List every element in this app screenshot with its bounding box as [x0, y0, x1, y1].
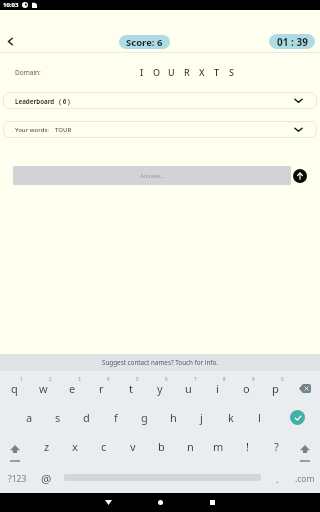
staticText: 3: [78, 376, 81, 382]
staticText: .com: [295, 473, 315, 485]
button[interactable]: n: [176, 433, 205, 459]
staticText: 10:03: [3, 1, 19, 9]
staticText: c: [101, 439, 107, 454]
staticText: Leaderboard: [15, 97, 55, 105]
staticText: @: [41, 471, 52, 487]
staticText: z: [44, 439, 50, 454]
staticText: ( 6 ): [59, 97, 70, 105]
button[interactable]: .com: [290, 466, 320, 492]
staticText: e: [69, 381, 76, 396]
staticText: t: [129, 381, 133, 396]
button[interactable]: r: [87, 375, 116, 401]
button[interactable]: f: [101, 404, 130, 430]
staticText: q: [11, 381, 18, 396]
button[interactable]: 01 : 39: [269, 34, 315, 49]
button[interactable]: @: [32, 466, 60, 492]
staticText: 5: [136, 376, 139, 382]
button[interactable]: w: [29, 375, 58, 401]
button[interactable]: e: [58, 375, 87, 401]
button[interactable]: a: [15, 404, 44, 430]
button[interactable]: p: [261, 375, 290, 401]
button[interactable]: u: [174, 375, 203, 401]
button[interactable]: d: [72, 404, 101, 430]
staticText: Your words:: [15, 126, 49, 134]
staticText: 01 : 39: [277, 35, 308, 49]
button[interactable]: t: [116, 375, 145, 401]
staticText: b: [158, 439, 165, 454]
button[interactable]: ?123: [2, 466, 32, 492]
staticText: f: [114, 410, 118, 425]
button[interactable]: Home: [134, 493, 186, 512]
staticText: m: [213, 439, 224, 454]
staticText: d: [83, 410, 90, 425]
staticText: O: [153, 66, 161, 78]
staticText: 0: [281, 376, 284, 382]
button[interactable]: Submit answer: [293, 169, 307, 183]
button[interactable]: v: [118, 433, 147, 459]
staticText: g: [141, 410, 148, 425]
staticText: u: [185, 381, 192, 396]
button[interactable]: j: [187, 404, 216, 430]
button[interactable]: l: [245, 404, 274, 430]
button[interactable]: Enter: [282, 404, 312, 430]
staticText: Domain:: [15, 68, 41, 77]
button[interactable]: Backspace: [290, 375, 319, 401]
button[interactable]: q: [0, 375, 29, 401]
button[interactable]: Back: [0, 29, 22, 53]
button[interactable]: i: [203, 375, 232, 401]
staticText: w: [39, 381, 48, 396]
staticText: Score: 6: [126, 36, 163, 49]
staticText: X: [199, 66, 205, 78]
staticText: Suggest contact names? Touch for info.: [102, 358, 218, 367]
staticText: 8: [223, 376, 226, 382]
button[interactable]: k: [216, 404, 245, 430]
staticText: j: [200, 410, 203, 425]
button[interactable]: !: [233, 433, 262, 459]
button[interactable]: g: [130, 404, 159, 430]
staticText: n: [187, 439, 194, 454]
staticText: s: [55, 410, 61, 425]
staticText: !: [246, 439, 249, 454]
staticText: S: [229, 66, 234, 78]
staticText: k: [228, 410, 234, 425]
staticText: 2: [49, 376, 52, 382]
button[interactable]: Your words:: [3, 121, 317, 138]
button[interactable]: y: [145, 375, 174, 401]
staticText: x: [72, 439, 78, 454]
staticText: v: [130, 439, 136, 454]
button[interactable]: Leaderboard: [3, 92, 317, 109]
button[interactable]: b: [147, 433, 176, 459]
button[interactable]: o: [232, 375, 261, 401]
staticText: .: [276, 473, 279, 485]
button[interactable]: h: [159, 404, 188, 430]
staticText: T: [214, 66, 220, 78]
button[interactable]: Score: 6: [119, 35, 170, 49]
button[interactable]: Back: [82, 493, 134, 512]
button[interactable]: x: [60, 433, 89, 459]
button[interactable]: z: [32, 433, 61, 459]
staticText: 1: [20, 376, 23, 382]
staticText: o: [243, 381, 250, 396]
button[interactable]: ?: [262, 433, 291, 459]
staticText: 9: [252, 376, 255, 382]
button[interactable]: Shift: [1, 433, 29, 459]
button[interactable]: Shift: [291, 433, 319, 459]
staticText: 4: [107, 376, 110, 382]
button[interactable]: s: [43, 404, 72, 430]
button[interactable]: m: [204, 433, 233, 459]
staticText: ?123: [8, 473, 27, 485]
staticText: a: [26, 410, 33, 425]
staticText: 6: [165, 376, 168, 382]
staticText: ?: [274, 439, 279, 454]
button[interactable]: Recent apps: [186, 493, 238, 512]
staticText: p: [272, 381, 279, 396]
staticText: h: [170, 410, 177, 425]
staticText: U: [168, 66, 175, 78]
staticText: i: [216, 381, 219, 396]
button[interactable]: c: [89, 433, 118, 459]
staticText: l: [258, 410, 261, 425]
staticText: TOUR: [55, 126, 72, 134]
button[interactable]: .: [264, 466, 290, 492]
